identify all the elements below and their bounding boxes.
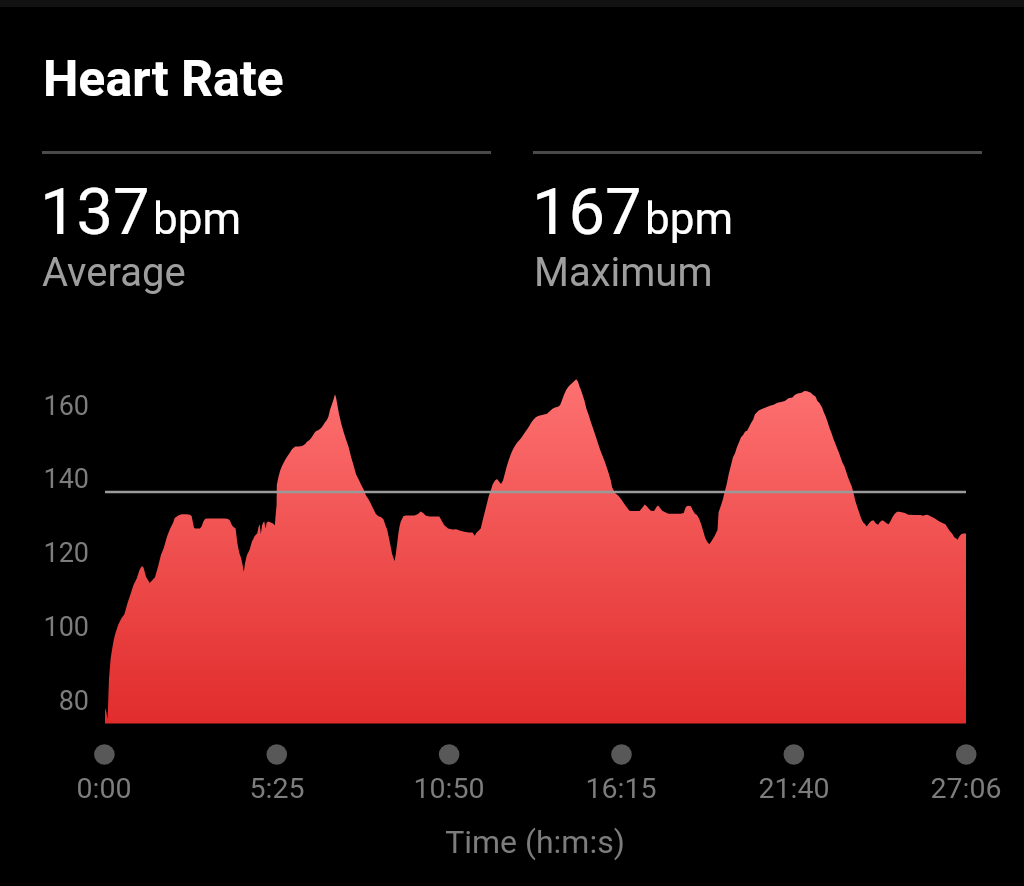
staticText: Average bbox=[42, 249, 186, 296]
staticText: 167 bbox=[532, 174, 642, 250]
staticText: bpm bbox=[153, 193, 241, 245]
button[interactable]: 137 bbox=[30, 140, 503, 302]
staticText: Time (h:m:s) bbox=[285, 823, 785, 861]
staticText: Maximum bbox=[534, 249, 713, 296]
staticText: 0:00 bbox=[14, 772, 194, 805]
staticText: 16:15 bbox=[531, 772, 711, 805]
staticText: 100 bbox=[0, 611, 89, 643]
staticText: 10:50 bbox=[359, 772, 539, 805]
staticText: 137 bbox=[40, 174, 150, 250]
staticText: 120 bbox=[0, 537, 89, 569]
staticText: Heart Rate bbox=[43, 50, 284, 109]
button[interactable]: Heart rate graph over time bbox=[30, 340, 994, 780]
staticText: 21:40 bbox=[704, 772, 884, 805]
button[interactable]: 167 bbox=[521, 140, 994, 302]
staticText: bpm bbox=[645, 193, 733, 245]
button[interactable]: Heart Rate bbox=[24, 32, 344, 108]
staticText: 5:25 bbox=[187, 772, 367, 805]
staticText: 80 bbox=[0, 685, 89, 717]
staticText: 160 bbox=[0, 390, 89, 422]
staticText: 140 bbox=[0, 463, 89, 495]
staticText: 27:06 bbox=[876, 772, 1024, 805]
